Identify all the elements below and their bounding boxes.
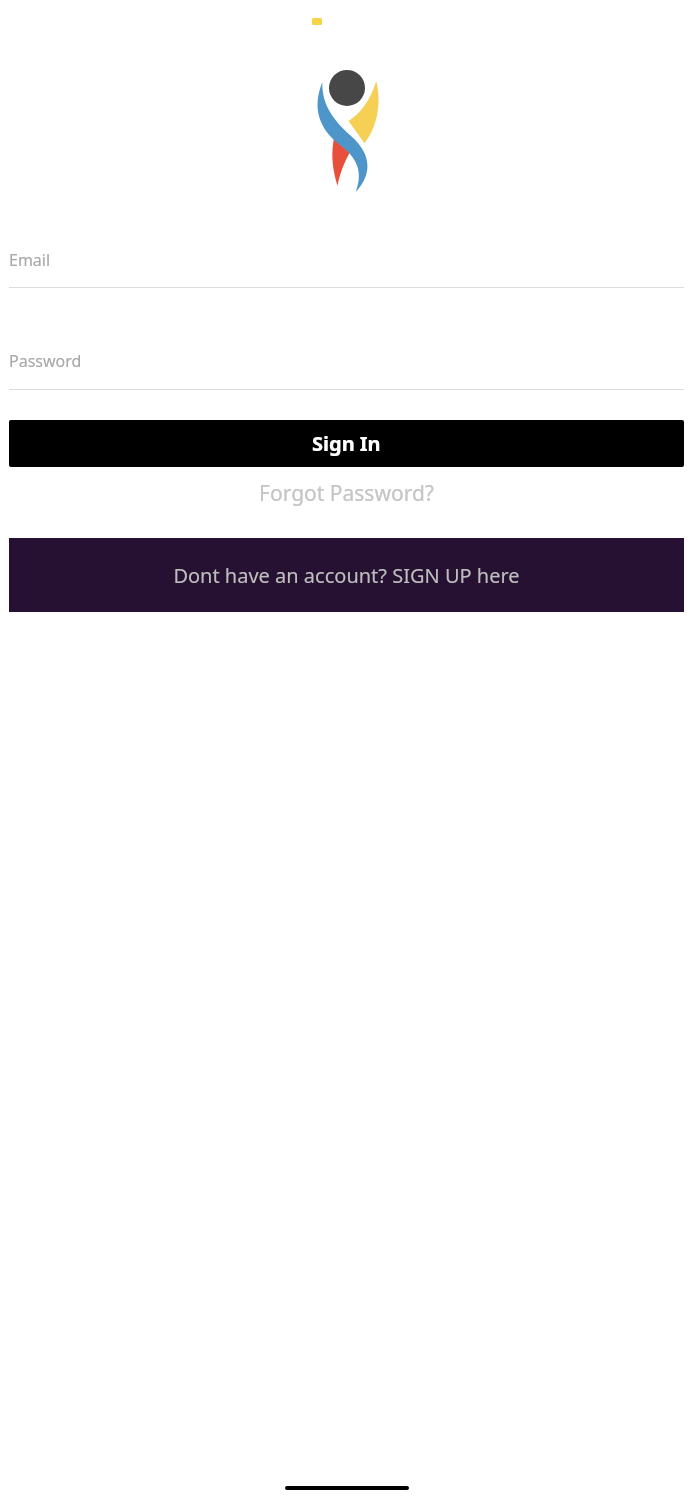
button[interactable]: Forgot Password? (0, 473, 693, 513)
staticText: Sign In (312, 430, 381, 457)
staticText: Dont have an account? SIGN UP here (173, 562, 520, 589)
button[interactable]: Dont have an account? SIGN UP here (9, 538, 684, 612)
staticText: Forgot Password? (259, 479, 434, 508)
button[interactable]: Sign In (9, 420, 684, 467)
button[interactable]: Email (9, 249, 684, 288)
staticText: Password (9, 350, 82, 372)
other: Notification indicator (312, 18, 322, 25)
button[interactable]: Password (9, 350, 684, 390)
staticText: Email (9, 249, 51, 271)
